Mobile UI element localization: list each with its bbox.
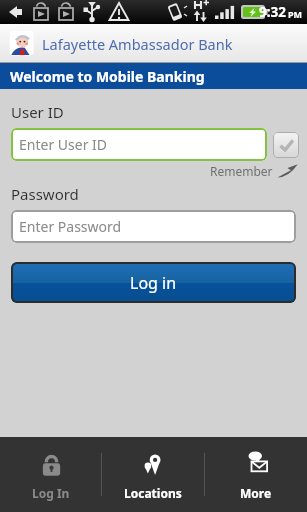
staticText: Lafayette Ambassador Bank: [42, 34, 233, 54]
staticText: Welcome to Mobile Banking: [10, 67, 205, 86]
staticText: PM: [288, 8, 303, 20]
staticText: More: [240, 485, 272, 501]
button[interactable]: Remember user ID: [273, 132, 299, 158]
staticText: 9:32: [259, 3, 286, 21]
button[interactable]: Enter Password: [11, 210, 296, 243]
staticText: Log In: [32, 485, 70, 501]
staticText: Remember: [210, 163, 273, 179]
button[interactable]: Enter User ID: [11, 128, 267, 161]
staticText: Log in: [130, 272, 177, 294]
button[interactable]: More: [205, 437, 307, 512]
staticText: Password: [11, 184, 79, 204]
staticText: User ID: [11, 102, 64, 122]
staticText: Locations: [124, 485, 182, 501]
button[interactable]: Locations: [102, 437, 204, 512]
staticText: Enter User ID: [19, 135, 108, 154]
button[interactable]: Log In: [0, 437, 101, 512]
staticText: Enter Password: [19, 217, 122, 236]
button[interactable]: Log in: [11, 262, 296, 303]
